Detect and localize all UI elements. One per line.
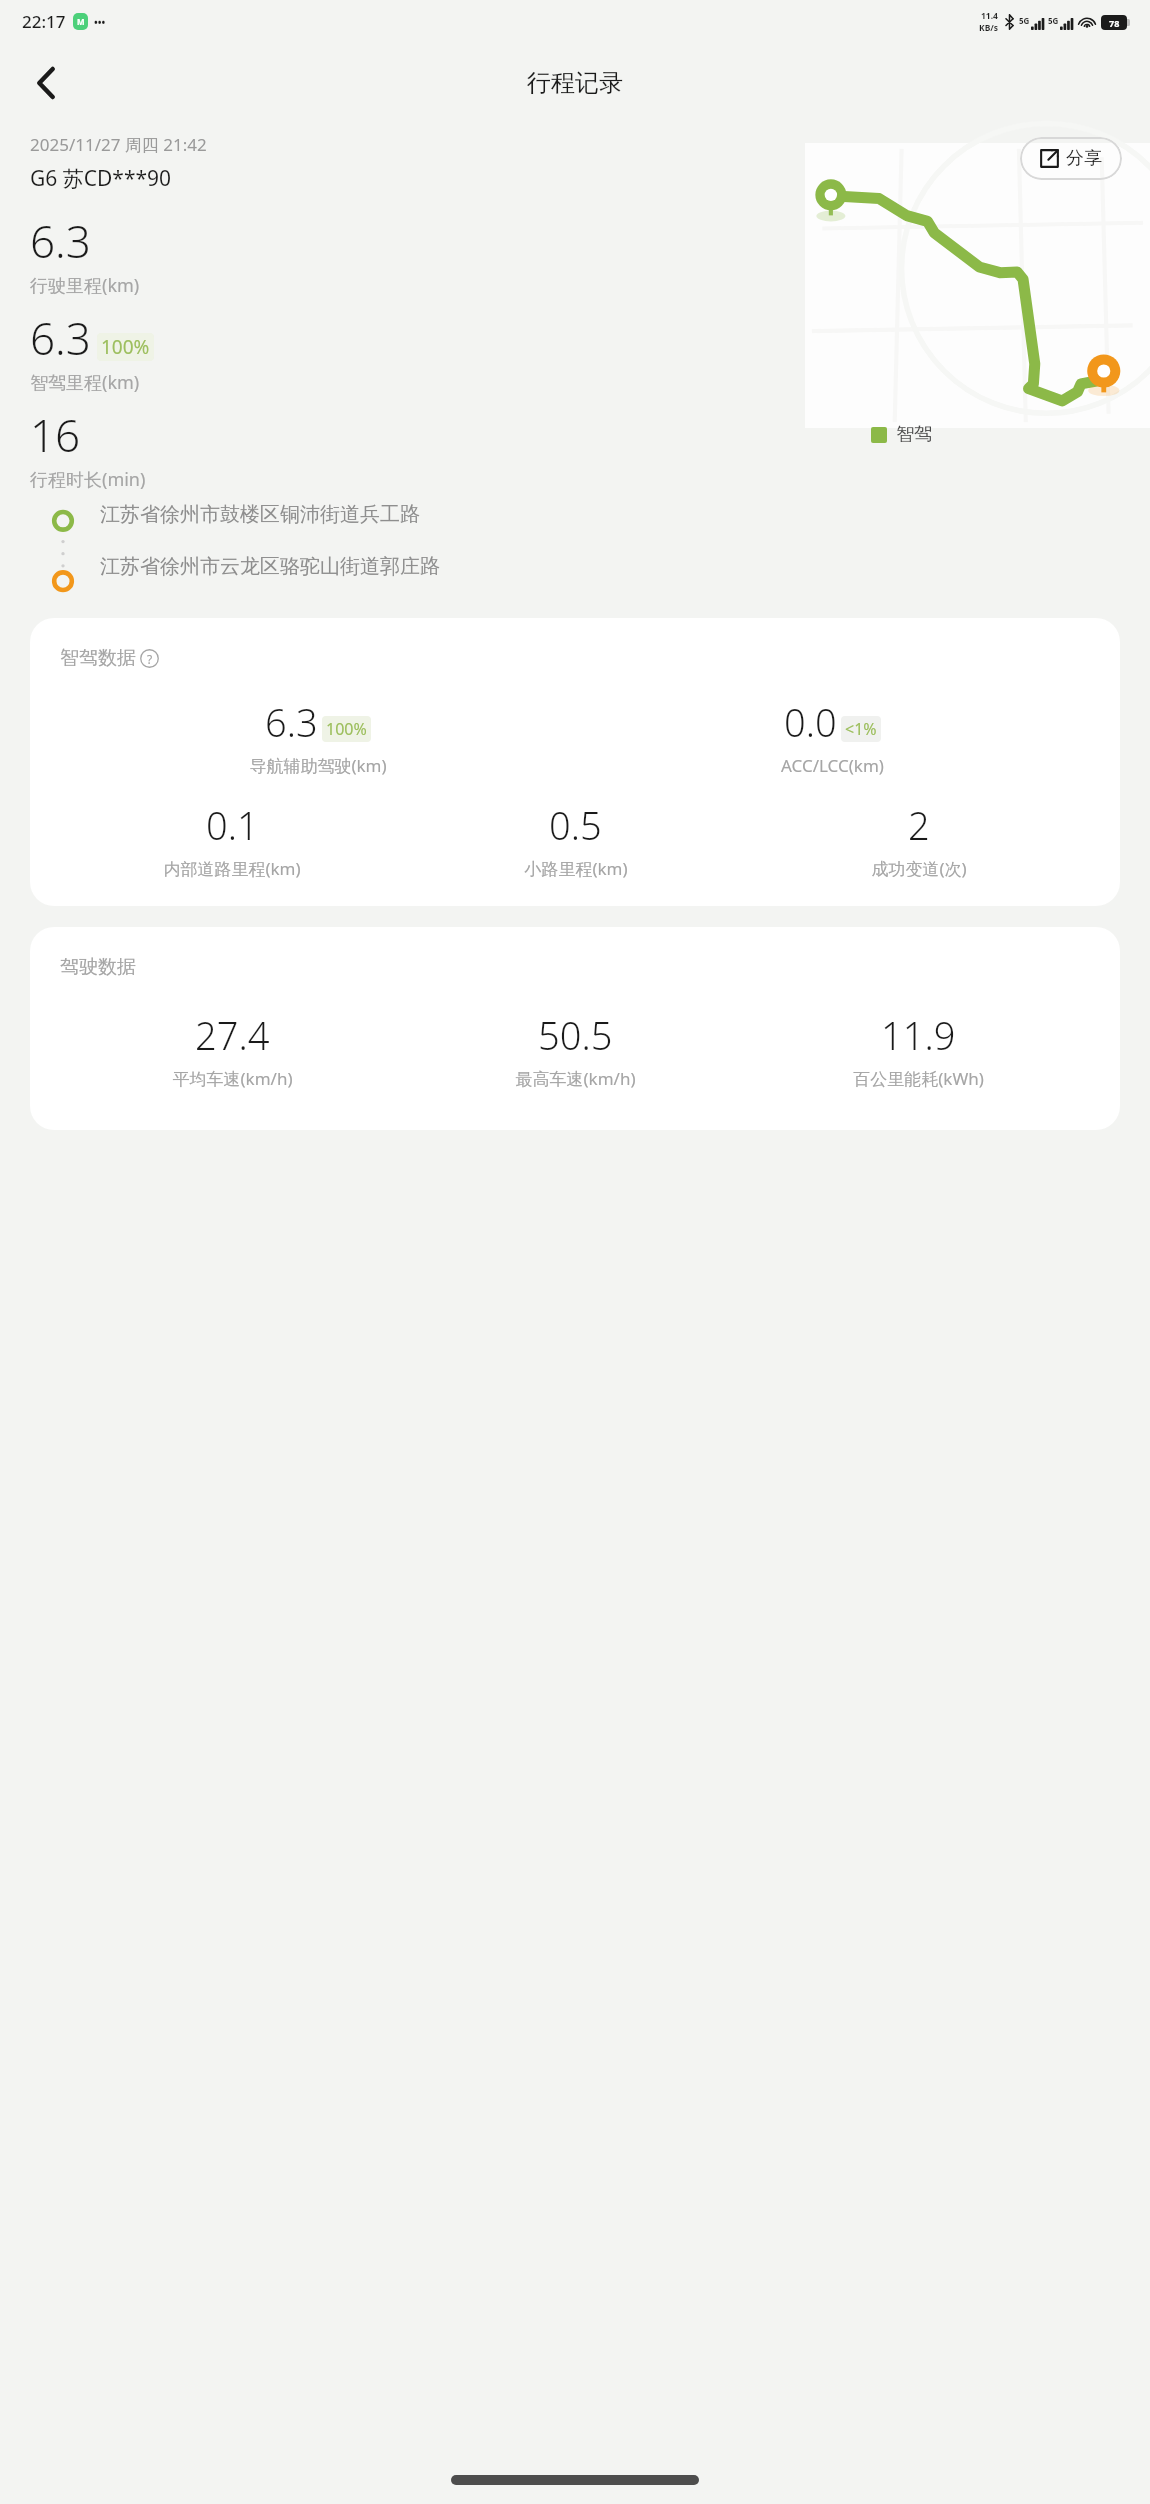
button[interactable]: 分享 — [1020, 137, 1122, 180]
staticText: G6 苏CD***90 — [30, 164, 172, 193]
staticText: 智驾里程(km) — [30, 370, 140, 395]
staticText: 行程记录 — [527, 68, 623, 98]
staticText: 78 — [1109, 17, 1120, 29]
button[interactable]: Back — [18, 55, 74, 111]
staticText: 江苏省徐州市云龙区骆驼山街道郭庄路 — [100, 554, 440, 579]
staticText: 2 — [908, 799, 930, 851]
staticText: 5G — [1048, 15, 1059, 26]
staticText: 100% — [101, 334, 150, 360]
staticText: 22:17 — [22, 10, 66, 33]
staticText: 智驾数据 — [60, 646, 136, 670]
staticText: 智驾 — [896, 423, 932, 446]
staticText: 行程时长(min) — [30, 467, 146, 492]
staticText: 小路里程(km) — [524, 857, 628, 880]
button[interactable]: Info — [140, 649, 159, 668]
staticText: 行驶里程(km) — [30, 273, 140, 298]
staticText: 6.3 — [265, 696, 318, 748]
staticText: 50.5 — [538, 1009, 613, 1061]
staticText: 100% — [326, 718, 367, 740]
staticText: 0.1 — [206, 799, 259, 851]
staticText: 0.5 — [549, 799, 602, 851]
staticText: KB/s — [979, 22, 999, 34]
staticText: ••• — [94, 15, 106, 29]
staticText: 11.4 — [981, 10, 998, 22]
staticText: 导航辅助驾驶(km) — [249, 754, 387, 777]
staticText: <1% — [845, 718, 877, 740]
staticText: 6.3 — [30, 211, 91, 271]
staticText: ACC/LCC(km) — [781, 754, 884, 777]
staticText: 6.3 — [30, 308, 91, 368]
staticText: 江苏省徐州市鼓楼区铜沛街道兵工路 — [100, 502, 420, 527]
staticText: 16 — [30, 405, 81, 465]
staticText: 0.0 — [784, 696, 837, 748]
staticText: 11.9 — [881, 1009, 956, 1061]
staticText: 最高车速(km/h) — [515, 1067, 636, 1090]
staticText: 内部道路里程(km) — [163, 857, 301, 880]
staticText: 百公里能耗(kWh) — [853, 1067, 984, 1090]
staticText: 驾驶数据 — [60, 955, 136, 979]
staticText: 分享 — [1066, 147, 1102, 170]
staticText: M — [77, 16, 85, 27]
staticText: 平均车速(km/h) — [172, 1067, 293, 1090]
staticText: ? — [147, 651, 153, 667]
staticText: 27.4 — [195, 1009, 270, 1061]
staticText: 成功变道(次) — [871, 857, 967, 880]
staticText: 5G — [1019, 15, 1030, 26]
staticText: 2025/11/27 周四 21:42 — [30, 133, 207, 156]
